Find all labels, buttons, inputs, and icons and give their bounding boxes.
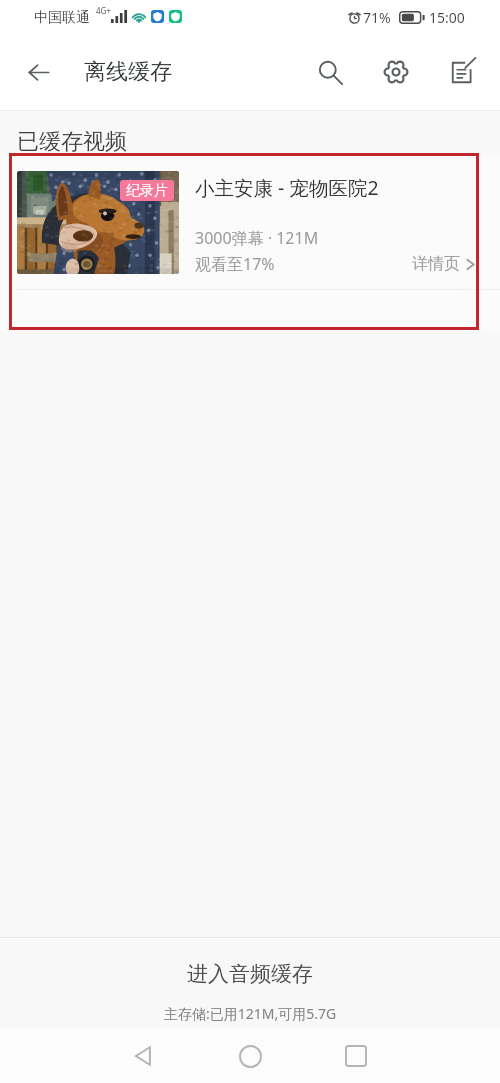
button[interactable]: Back bbox=[123, 1036, 163, 1076]
button[interactable]: Home bbox=[230, 1036, 270, 1076]
button[interactable]: 纪录片 bbox=[0, 155, 500, 289]
staticText: 小主安康 - 宠物医院2 bbox=[195, 174, 379, 201]
staticText: 进入音频缓存 bbox=[187, 961, 313, 987]
button[interactable]: 进入音频缓存 bbox=[0, 938, 500, 1001]
staticText: 3000弹幕 · 121M bbox=[195, 227, 319, 249]
staticText: 详情页 bbox=[412, 254, 460, 274]
staticText: 纪录片 bbox=[126, 182, 168, 200]
staticText: 主存储:已用121M,可用5.7G bbox=[164, 1004, 337, 1023]
button[interactable]: Recents bbox=[336, 1036, 376, 1076]
staticText: 15:00 bbox=[429, 8, 465, 27]
button[interactable]: Search bbox=[298, 34, 362, 110]
staticText: 中国联通 bbox=[34, 9, 90, 27]
staticText: 观看至17% bbox=[195, 253, 275, 275]
button[interactable]: Back bbox=[0, 34, 78, 110]
button[interactable]: Edit bbox=[430, 34, 494, 110]
staticText: 71% bbox=[363, 8, 391, 27]
button[interactable]: Settings bbox=[362, 34, 430, 110]
staticText: 4G+ bbox=[96, 5, 111, 16]
staticText: 离线缓存 bbox=[84, 58, 172, 86]
staticText: 已缓存视频 bbox=[17, 128, 127, 156]
